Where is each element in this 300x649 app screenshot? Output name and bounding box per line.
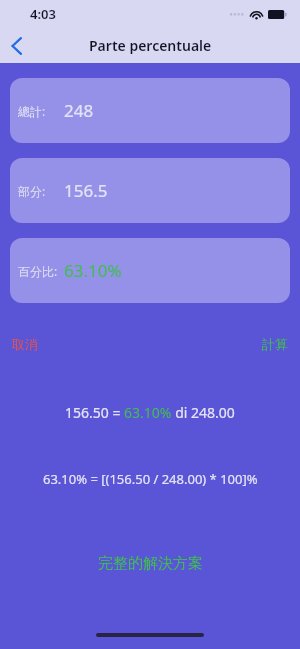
button[interactable]: 完整的解決方案 bbox=[90, 550, 211, 577]
staticText: 156.5 bbox=[64, 179, 108, 202]
staticText: 計算 bbox=[262, 336, 288, 352]
staticText: 完整的解決方案 bbox=[98, 554, 203, 573]
button[interactable]: 取消 bbox=[10, 333, 40, 355]
button[interactable]: 總計: bbox=[10, 78, 290, 143]
staticText: 4:03 bbox=[30, 5, 56, 23]
staticText: 248 bbox=[64, 99, 94, 122]
staticText: 156.50 = 63.10% di 248.00 bbox=[65, 403, 235, 422]
button[interactable]: 部分: bbox=[10, 158, 290, 223]
staticText: 63.10% bbox=[64, 259, 122, 282]
button[interactable]: Back bbox=[0, 28, 34, 63]
button[interactable]: 計算 bbox=[260, 333, 290, 355]
staticText: 取消 bbox=[12, 336, 38, 352]
staticText: 部分: bbox=[18, 183, 46, 199]
staticText: Parte percentuale bbox=[89, 36, 212, 55]
button[interactable]: 百分比: bbox=[10, 238, 290, 303]
staticText: 63.10% = [(156.50 / 248.00) * 100]% bbox=[43, 470, 258, 488]
staticText: 百分比: bbox=[18, 263, 58, 279]
staticText: 總計: bbox=[18, 103, 46, 119]
